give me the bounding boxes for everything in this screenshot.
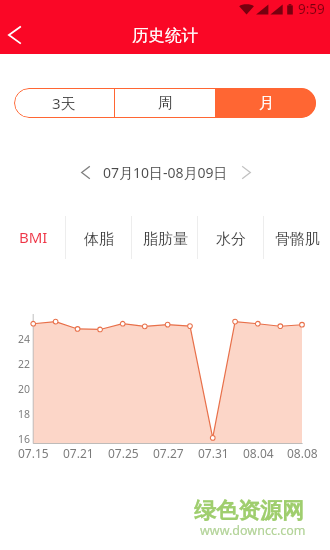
staticText: 月 — [259, 94, 274, 113]
staticText: 脂肪量 — [143, 230, 188, 249]
button[interactable]: 周 — [115, 88, 215, 118]
staticText: 08.04 — [243, 445, 274, 461]
button[interactable]: Next period — [233, 158, 259, 186]
staticText: 体脂 — [84, 230, 114, 249]
staticText: 07.21 — [63, 445, 94, 461]
staticText: 07.25 — [108, 445, 139, 461]
staticText: 周 — [158, 94, 173, 113]
staticText: 07.15 — [18, 445, 49, 461]
button[interactable]: 水分 — [198, 216, 264, 259]
staticText: 历史统计 — [132, 25, 198, 46]
staticText: 24 — [18, 332, 31, 346]
staticText: 水分 — [216, 230, 246, 249]
staticText: 20 — [18, 382, 31, 396]
staticText: 22 — [18, 357, 31, 371]
staticText: 16 — [18, 432, 31, 446]
staticText: 9:59 — [298, 0, 325, 18]
button[interactable]: 月 — [216, 88, 316, 118]
staticText: 07月10日-08月09日 — [103, 163, 228, 182]
staticText: www.downcc.com — [200, 522, 306, 539]
staticText: 3天 — [52, 93, 76, 113]
staticText: 骨骼肌 — [275, 230, 320, 249]
button[interactable]: 脂肪量 — [132, 216, 198, 259]
button[interactable]: 骨骼肌 — [264, 216, 330, 259]
staticText: 07.31 — [198, 445, 229, 461]
staticText: 绿色资源网 — [194, 497, 304, 525]
staticText: 18 — [18, 407, 31, 421]
button[interactable]: Back — [0, 16, 28, 53]
staticText: 08.08 — [287, 445, 318, 461]
button[interactable]: BMI — [0, 216, 66, 259]
staticText: 07.27 — [153, 445, 184, 461]
button[interactable]: Previous period — [72, 158, 98, 186]
staticText: BMI — [19, 227, 48, 247]
button[interactable]: 3天 — [14, 88, 114, 118]
button[interactable]: 体脂 — [66, 216, 132, 259]
